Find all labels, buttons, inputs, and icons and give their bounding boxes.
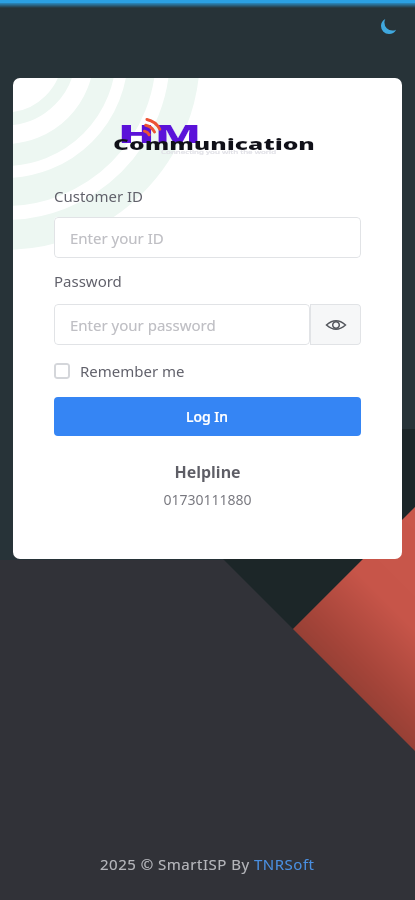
staticText: Connecting you with the world	[161, 149, 276, 156]
staticText: Customer ID	[54, 186, 144, 206]
button[interactable]: Log In	[54, 397, 361, 436]
staticText: Helpline	[54, 461, 361, 483]
staticText: Remember me	[80, 361, 185, 381]
staticText: Log In	[186, 407, 229, 426]
staticText: HM	[118, 117, 202, 150]
staticText: Communication	[113, 134, 316, 154]
button[interactable]: TNRSoft	[254, 854, 315, 874]
button[interactable]: Enter your ID	[54, 217, 361, 258]
staticText: Password	[54, 271, 122, 291]
button[interactable]: Enter your password	[54, 304, 310, 345]
staticText: 01730111880	[54, 490, 361, 509]
button[interactable]: Show password	[310, 304, 361, 345]
button[interactable]: Remember me	[54, 361, 185, 381]
staticText: Enter your password	[70, 315, 216, 335]
staticText: Enter your ID	[70, 228, 164, 248]
button[interactable]: Toggle dark mode	[373, 10, 405, 42]
staticText: 2025 © SmartISP By	[100, 854, 254, 874]
